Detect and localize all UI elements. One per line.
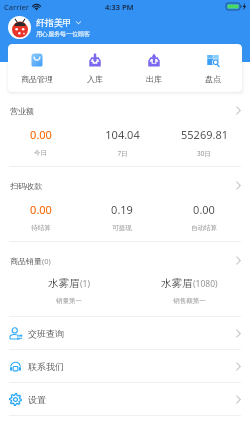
staticText: 扫码收款: [10, 181, 42, 191]
button[interactable]: 0.00: [0, 202, 81, 232]
staticText: 用心服务每一位顾客: [36, 30, 90, 38]
button[interactable]: 0.00: [0, 127, 81, 157]
staticText: 销售额第一: [173, 297, 206, 305]
staticText: 水雾眉: [161, 277, 193, 290]
staticText: 交班查询: [28, 328, 64, 339]
staticText: 0.19: [111, 202, 133, 217]
staticText: 0.00: [30, 202, 52, 217]
staticText: 4:33 PM: [105, 2, 134, 12]
staticText: 104.04: [105, 127, 140, 142]
staticText: 今日: [34, 149, 47, 157]
button[interactable]: 0.00: [163, 202, 245, 232]
button[interactable]: 盘点: [183, 44, 242, 84]
staticText: (1): [80, 278, 90, 290]
button[interactable]: 出库: [124, 44, 183, 84]
button[interactable]: 商品销量: [0, 242, 250, 269]
button[interactable]: 设置: [0, 383, 250, 415]
button[interactable]: 0.19: [81, 202, 163, 232]
staticText: 可提现: [112, 224, 132, 232]
staticText: 入库: [87, 74, 103, 84]
button[interactable]: 交班查询: [0, 317, 250, 349]
staticText: 出库: [146, 74, 162, 84]
staticText: 0.00: [193, 202, 215, 217]
button[interactable]: 104.04: [81, 127, 163, 158]
button[interactable]: 商品管理: [8, 44, 66, 84]
staticText: 盘点: [205, 74, 221, 84]
staticText: (1080): [193, 278, 218, 290]
staticText: 55269.81: [181, 127, 228, 142]
staticText: 商品销量: [10, 256, 42, 266]
staticText: 商品管理: [21, 74, 53, 84]
button[interactable]: 营业额: [0, 92, 250, 119]
staticText: 7日: [117, 149, 128, 158]
staticText: 销量第一: [56, 297, 82, 305]
staticText: 自动结算: [191, 224, 217, 232]
button[interactable]: 水雾眉: [8, 275, 129, 305]
button[interactable]: 55269.81: [163, 127, 245, 158]
button[interactable]: 纤指美甲: [8, 16, 90, 39]
staticText: 待结算: [31, 224, 51, 232]
button[interactable]: 扫码收款: [0, 167, 250, 194]
button[interactable]: 联系我们: [0, 350, 250, 382]
button[interactable]: 入库: [66, 44, 124, 84]
staticText: 0.00: [30, 127, 52, 142]
button[interactable]: 水雾眉: [129, 275, 250, 305]
staticText: 联系我们: [28, 361, 64, 372]
staticText: 纤指美甲: [36, 17, 72, 28]
staticText: 营业额: [10, 106, 34, 116]
staticText: 水雾眉: [48, 277, 80, 290]
staticText: 30日: [197, 149, 211, 158]
staticText: 设置: [28, 394, 46, 405]
staticText: (0): [42, 256, 51, 266]
staticText: Carrier: [4, 2, 29, 12]
